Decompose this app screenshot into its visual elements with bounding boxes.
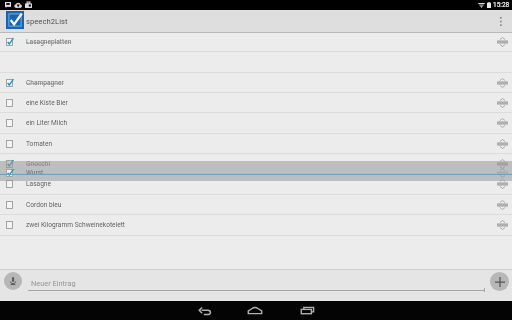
button[interactable]: Checked xyxy=(0,154,512,174)
button[interactable]: Unchecked xyxy=(3,219,15,231)
button[interactable]: Unchecked xyxy=(3,178,15,190)
staticText: Neuer Eintrag xyxy=(31,279,76,288)
button[interactable]: Back xyxy=(192,301,218,320)
button[interactable]: Unchecked xyxy=(3,199,15,211)
button[interactable]: Unchecked xyxy=(0,215,512,235)
staticText: 15:28 xyxy=(493,1,510,9)
button[interactable]: Unchecked xyxy=(3,97,15,109)
button[interactable]: Checked xyxy=(3,77,15,89)
staticText: Tomaten xyxy=(26,140,53,148)
staticText: Gnocchi xyxy=(26,160,51,168)
button[interactable]: Reorder xyxy=(495,35,509,49)
staticText: Lasagne xyxy=(26,180,51,188)
staticText: zwei Kilogramm Schweinekotelett xyxy=(26,221,126,229)
button[interactable]: Checked xyxy=(3,167,15,179)
button[interactable]: Reorder xyxy=(495,116,509,130)
staticText: Wurst xyxy=(26,169,44,177)
button[interactable]: Unchecked xyxy=(0,174,512,194)
button[interactable]: Reorder xyxy=(495,137,509,151)
button[interactable]: Checked xyxy=(3,36,15,48)
button[interactable]: Unchecked xyxy=(0,134,512,154)
staticText: eine Kiste Bier xyxy=(26,99,68,107)
button[interactable]: Add item xyxy=(490,272,509,291)
button[interactable]: Reorder xyxy=(495,177,509,191)
button[interactable]: Unchecked xyxy=(0,93,512,113)
staticText: Champagner xyxy=(26,79,64,87)
button[interactable]: Unchecked xyxy=(0,195,512,215)
button[interactable]: Checked xyxy=(0,32,512,52)
button[interactable]: Checked xyxy=(3,158,15,170)
button[interactable]: More options xyxy=(490,10,512,32)
button[interactable]: Voice input xyxy=(4,272,22,290)
staticText: Lasagneplatten xyxy=(26,38,72,46)
button[interactable]: Reorder xyxy=(495,96,509,110)
button[interactable]: Unchecked xyxy=(0,113,512,133)
button[interactable]: Checked xyxy=(0,73,512,93)
staticText: ein Liter Milch xyxy=(26,119,68,127)
staticText: Cordon bleu xyxy=(26,201,62,209)
button[interactable]: Reorder xyxy=(495,157,509,171)
button[interactable]: Reorder xyxy=(495,166,509,180)
button[interactable]: Recent apps xyxy=(294,301,320,320)
button[interactable]: Home xyxy=(242,301,268,320)
button[interactable]: Reorder xyxy=(495,76,509,90)
button[interactable]: Unchecked xyxy=(3,138,15,150)
button[interactable]: Reorder xyxy=(495,218,509,232)
staticText: speech2List xyxy=(26,17,68,26)
button[interactable]: Reorder xyxy=(495,198,509,212)
button[interactable]: Unchecked xyxy=(3,117,15,129)
